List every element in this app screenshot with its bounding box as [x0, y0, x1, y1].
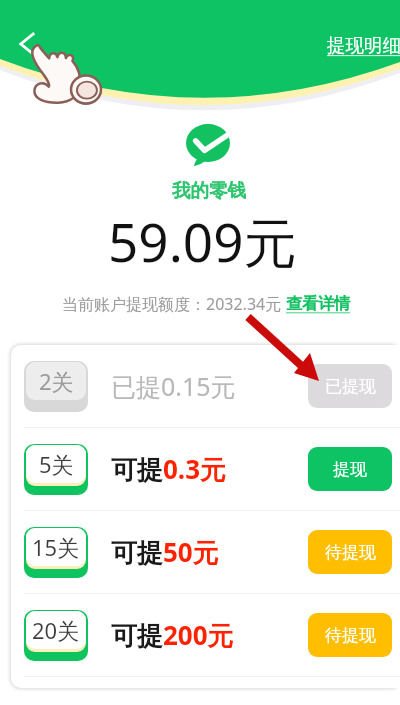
staticText: 20关	[32, 615, 80, 645]
staticText: 提现明细	[327, 34, 400, 57]
button[interactable]: 提现	[308, 447, 392, 491]
staticText: 15关	[32, 532, 80, 562]
staticText: 已提现	[325, 376, 376, 397]
button[interactable]: 提现明细	[327, 34, 400, 57]
button[interactable]: 查看详情	[286, 294, 350, 314]
staticText: 待提现	[325, 542, 376, 563]
button[interactable]: 2关	[11, 345, 400, 427]
button[interactable]: 5关	[11, 428, 400, 510]
staticText: 已提0.15元	[111, 369, 236, 403]
staticText: 可提200元	[111, 617, 234, 653]
button[interactable]: 待提现	[308, 613, 392, 657]
staticText: 当前账户提现额度：2032.34元	[62, 293, 286, 315]
staticText: 查看详情	[286, 294, 350, 314]
button[interactable]: 已提现	[308, 364, 392, 408]
staticText: 可提0.3元	[111, 451, 227, 487]
staticText: 提现	[333, 459, 367, 480]
staticText: 5关	[39, 449, 74, 479]
staticText: 可提50元	[111, 534, 219, 570]
staticText: 待提现	[325, 625, 376, 646]
staticText: 我的零钱	[172, 179, 246, 202]
staticText: 2关	[39, 366, 74, 396]
button[interactable]: 待提现	[308, 530, 392, 574]
button[interactable]: Back	[4, 22, 44, 62]
button[interactable]: 20关	[11, 594, 400, 676]
button[interactable]: 15关	[11, 511, 400, 593]
staticText: 59.09元	[108, 205, 297, 277]
